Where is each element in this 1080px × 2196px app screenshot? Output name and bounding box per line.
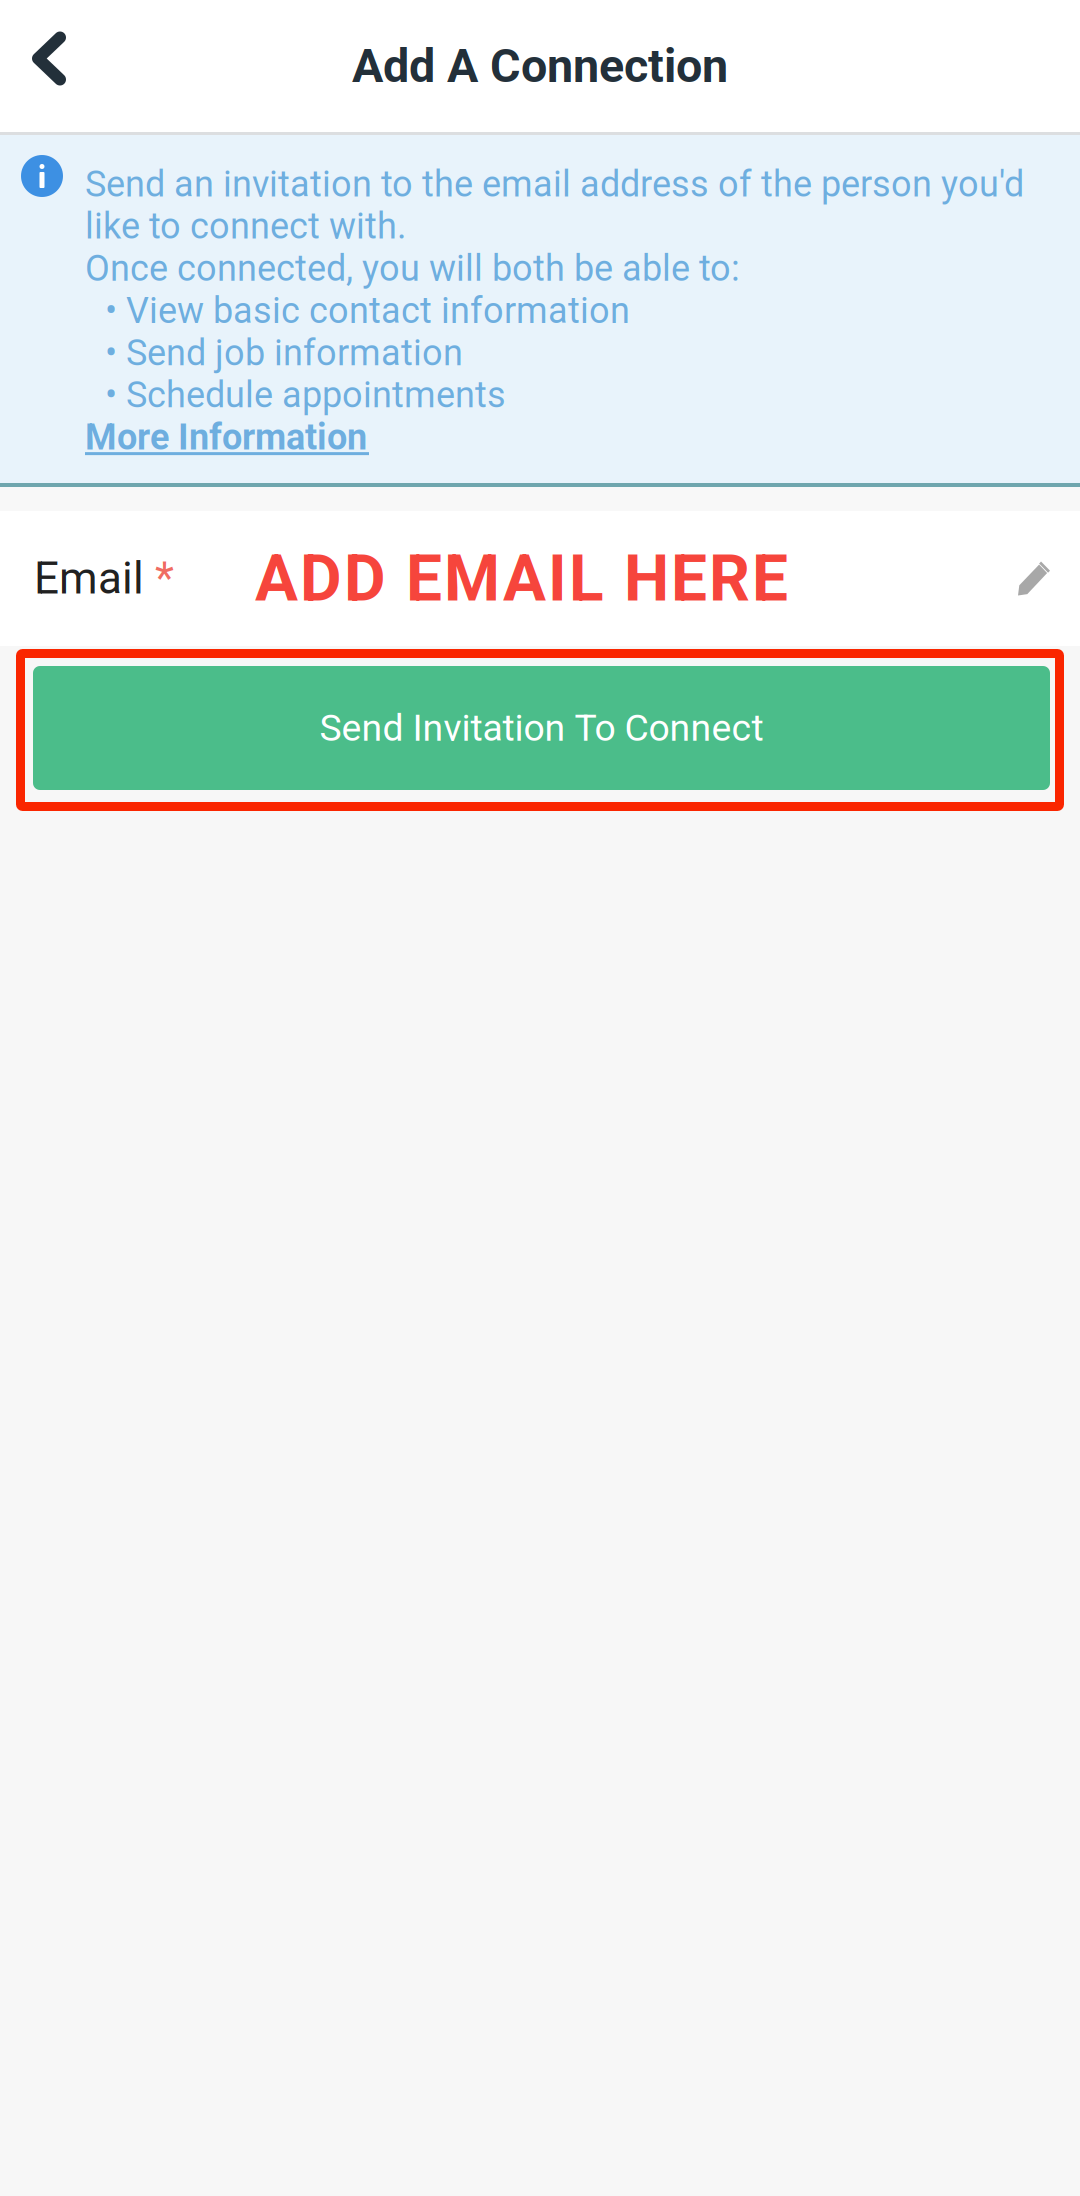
button[interactable]: Edit email xyxy=(988,511,1080,646)
staticText: • View basic contact information xyxy=(105,290,630,332)
staticText: • Schedule appointments xyxy=(105,374,506,416)
staticText: More Information xyxy=(85,416,367,458)
staticText: ADD EMAIL HERE xyxy=(255,541,788,616)
staticText: Send an invitation to the email address … xyxy=(85,163,1024,247)
staticText: Add A Connection xyxy=(352,39,728,93)
staticText: * xyxy=(144,553,174,604)
staticText: Send Invitation To Connect xyxy=(319,706,763,750)
button[interactable]: Back xyxy=(0,0,110,132)
button[interactable]: Send Invitation To Connect xyxy=(0,649,1080,811)
staticText: Email xyxy=(34,553,144,604)
staticText: • Send job information xyxy=(105,332,463,374)
button[interactable]: More Information xyxy=(85,416,369,464)
staticText: Once connected, you will both be able to… xyxy=(85,247,740,290)
button[interactable]: Email xyxy=(0,511,988,646)
